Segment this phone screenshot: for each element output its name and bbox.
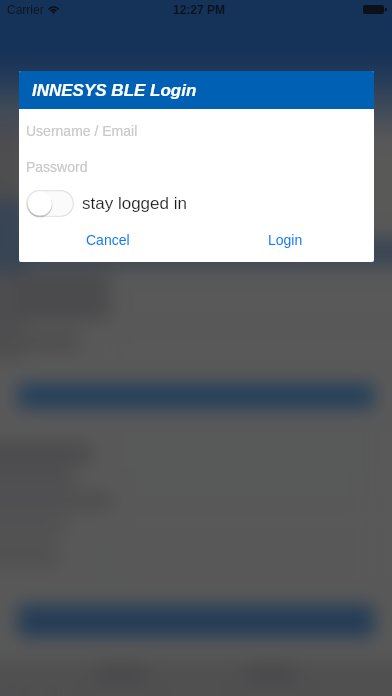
other: Battery full	[363, 5, 387, 14]
button[interactable]: Cancel	[19, 221, 196, 259]
staticText: Username / Email	[26, 123, 138, 139]
staticText: Login	[268, 232, 303, 248]
staticText: Cancel	[86, 232, 130, 248]
button[interactable]: Password	[19, 146, 374, 180]
staticText: Password	[26, 159, 88, 175]
staticText: stay logged in	[82, 194, 187, 213]
staticText: Carrier	[7, 3, 44, 16]
button[interactable]: Username / Email	[19, 110, 374, 144]
staticText: 12:27 PM	[173, 3, 226, 16]
button[interactable]: Login	[196, 221, 374, 259]
other: Wi-Fi	[47, 3, 60, 14]
button[interactable]: stay logged in toggle	[26, 190, 74, 217]
staticText: INNESYS BLE Login	[32, 81, 197, 100]
